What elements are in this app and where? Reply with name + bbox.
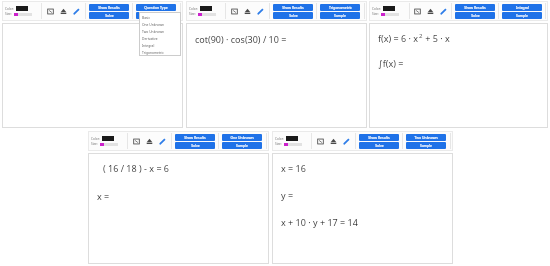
staticText: ( 16 / 18 ) - x = 6: [103, 162, 170, 174]
staticText: Two Unknown: [414, 135, 438, 140]
staticText: Trigonometric: [329, 5, 352, 10]
staticText: Integral: [516, 5, 529, 10]
button[interactable]: Solve: [455, 12, 495, 19]
button[interactable]: Pen: [342, 137, 351, 146]
button[interactable]: Eraser: [329, 137, 338, 146]
button[interactable]: Sample: [320, 12, 360, 19]
staticText: One Unknown: [142, 22, 165, 26]
staticText: Trigonometric: [142, 50, 164, 54]
staticText: Color:: [275, 137, 284, 141]
staticText: Derivative: [142, 36, 158, 40]
button[interactable]: Pen: [72, 7, 81, 16]
staticText: Color:: [372, 7, 381, 11]
button[interactable]: Sample: [406, 142, 446, 149]
button[interactable]: One Unknown: [222, 134, 262, 141]
button[interactable]: Undo: [46, 7, 55, 16]
button[interactable]: Show Results: [89, 4, 129, 11]
staticText: x = 16: [281, 162, 306, 174]
staticText: Solve: [375, 143, 384, 148]
button[interactable]: Sample: [502, 12, 542, 19]
button[interactable]: Question Type: [136, 4, 176, 11]
staticText: Size:: [372, 12, 379, 16]
button[interactable]: Show Results: [175, 134, 215, 141]
button[interactable]: Color:: [275, 136, 308, 146]
button[interactable]: Eraser: [59, 7, 68, 16]
staticText: x =: [97, 190, 110, 202]
staticText: Solve: [191, 143, 200, 148]
button[interactable]: One Unknown: [139, 20, 181, 27]
staticText: Sample: [334, 13, 346, 18]
staticText: Solve: [289, 13, 298, 18]
button[interactable]: Color:: [91, 136, 124, 146]
staticText: Size:: [91, 142, 98, 146]
staticText: Show Results: [464, 5, 486, 10]
button[interactable]: Undo: [230, 7, 239, 16]
button[interactable]: Integral: [502, 4, 542, 11]
button[interactable]: Derivative: [139, 34, 181, 41]
staticText: + 5 · x: [423, 32, 450, 44]
button[interactable]: Solve: [89, 12, 129, 19]
button[interactable]: Color:: [372, 6, 405, 16]
button[interactable]: Trigonometric: [320, 4, 360, 11]
button[interactable]: Show Results: [455, 4, 495, 11]
button[interactable]: Show Results: [359, 134, 399, 141]
staticText: f(x) = 6 · x: [378, 32, 419, 44]
staticText: Color:: [5, 7, 14, 11]
button[interactable]: Eraser: [145, 137, 154, 146]
button[interactable]: Solve: [136, 12, 176, 19]
staticText: Sample: [236, 143, 248, 148]
button[interactable]: Pen: [439, 7, 448, 16]
staticText: Color:: [189, 7, 198, 11]
button[interactable]: Eraser: [243, 7, 252, 16]
button[interactable]: Eraser: [426, 7, 435, 16]
button[interactable]: Trigonometric: [139, 48, 181, 55]
staticText: Show Results: [282, 5, 304, 10]
staticText: Size:: [5, 12, 12, 16]
button[interactable]: Undo: [316, 137, 325, 146]
button[interactable]: Undo: [413, 7, 422, 16]
button[interactable]: Undo: [132, 137, 141, 146]
staticText: Size:: [275, 142, 282, 146]
button[interactable]: Solve: [175, 142, 215, 149]
button[interactable]: Pen: [158, 137, 167, 146]
button[interactable]: Solve: [359, 142, 399, 149]
button[interactable]: Solve: [273, 12, 313, 19]
staticText: Show Results: [368, 135, 390, 140]
staticText: Basic: [142, 15, 151, 19]
staticText: y =: [281, 189, 294, 201]
button[interactable]: Color:: [189, 6, 222, 16]
button[interactable]: Basic: [139, 13, 181, 20]
staticText: Show Results: [98, 5, 120, 10]
staticText: ∫f(x) =: [378, 57, 404, 69]
staticText: Question Type: [144, 5, 168, 10]
staticText: Solve: [471, 13, 480, 18]
staticText: x + 10 · y + 17 = 14: [281, 216, 358, 228]
staticText: Solve: [105, 13, 114, 18]
button[interactable]: Sample: [222, 142, 262, 149]
staticText: Size:: [189, 12, 196, 16]
staticText: 2: [419, 32, 423, 40]
staticText: Color:: [91, 137, 100, 141]
staticText: Sample: [420, 143, 432, 148]
button[interactable]: Color:: [5, 6, 38, 16]
button[interactable]: Show Results: [273, 4, 313, 11]
button[interactable]: Two Unknown: [406, 134, 446, 141]
staticText: Sample: [516, 13, 528, 18]
button[interactable]: Integral: [139, 41, 181, 48]
staticText: Integral: [142, 43, 155, 47]
button[interactable]: Pen: [256, 7, 265, 16]
staticText: cot(90) · cos(30) / 10 =: [195, 33, 287, 45]
button[interactable]: Two Unknown: [139, 27, 181, 34]
staticText: Two Unknown: [142, 29, 165, 33]
staticText: One Unknown: [230, 135, 254, 140]
staticText: Show Results: [184, 135, 206, 140]
